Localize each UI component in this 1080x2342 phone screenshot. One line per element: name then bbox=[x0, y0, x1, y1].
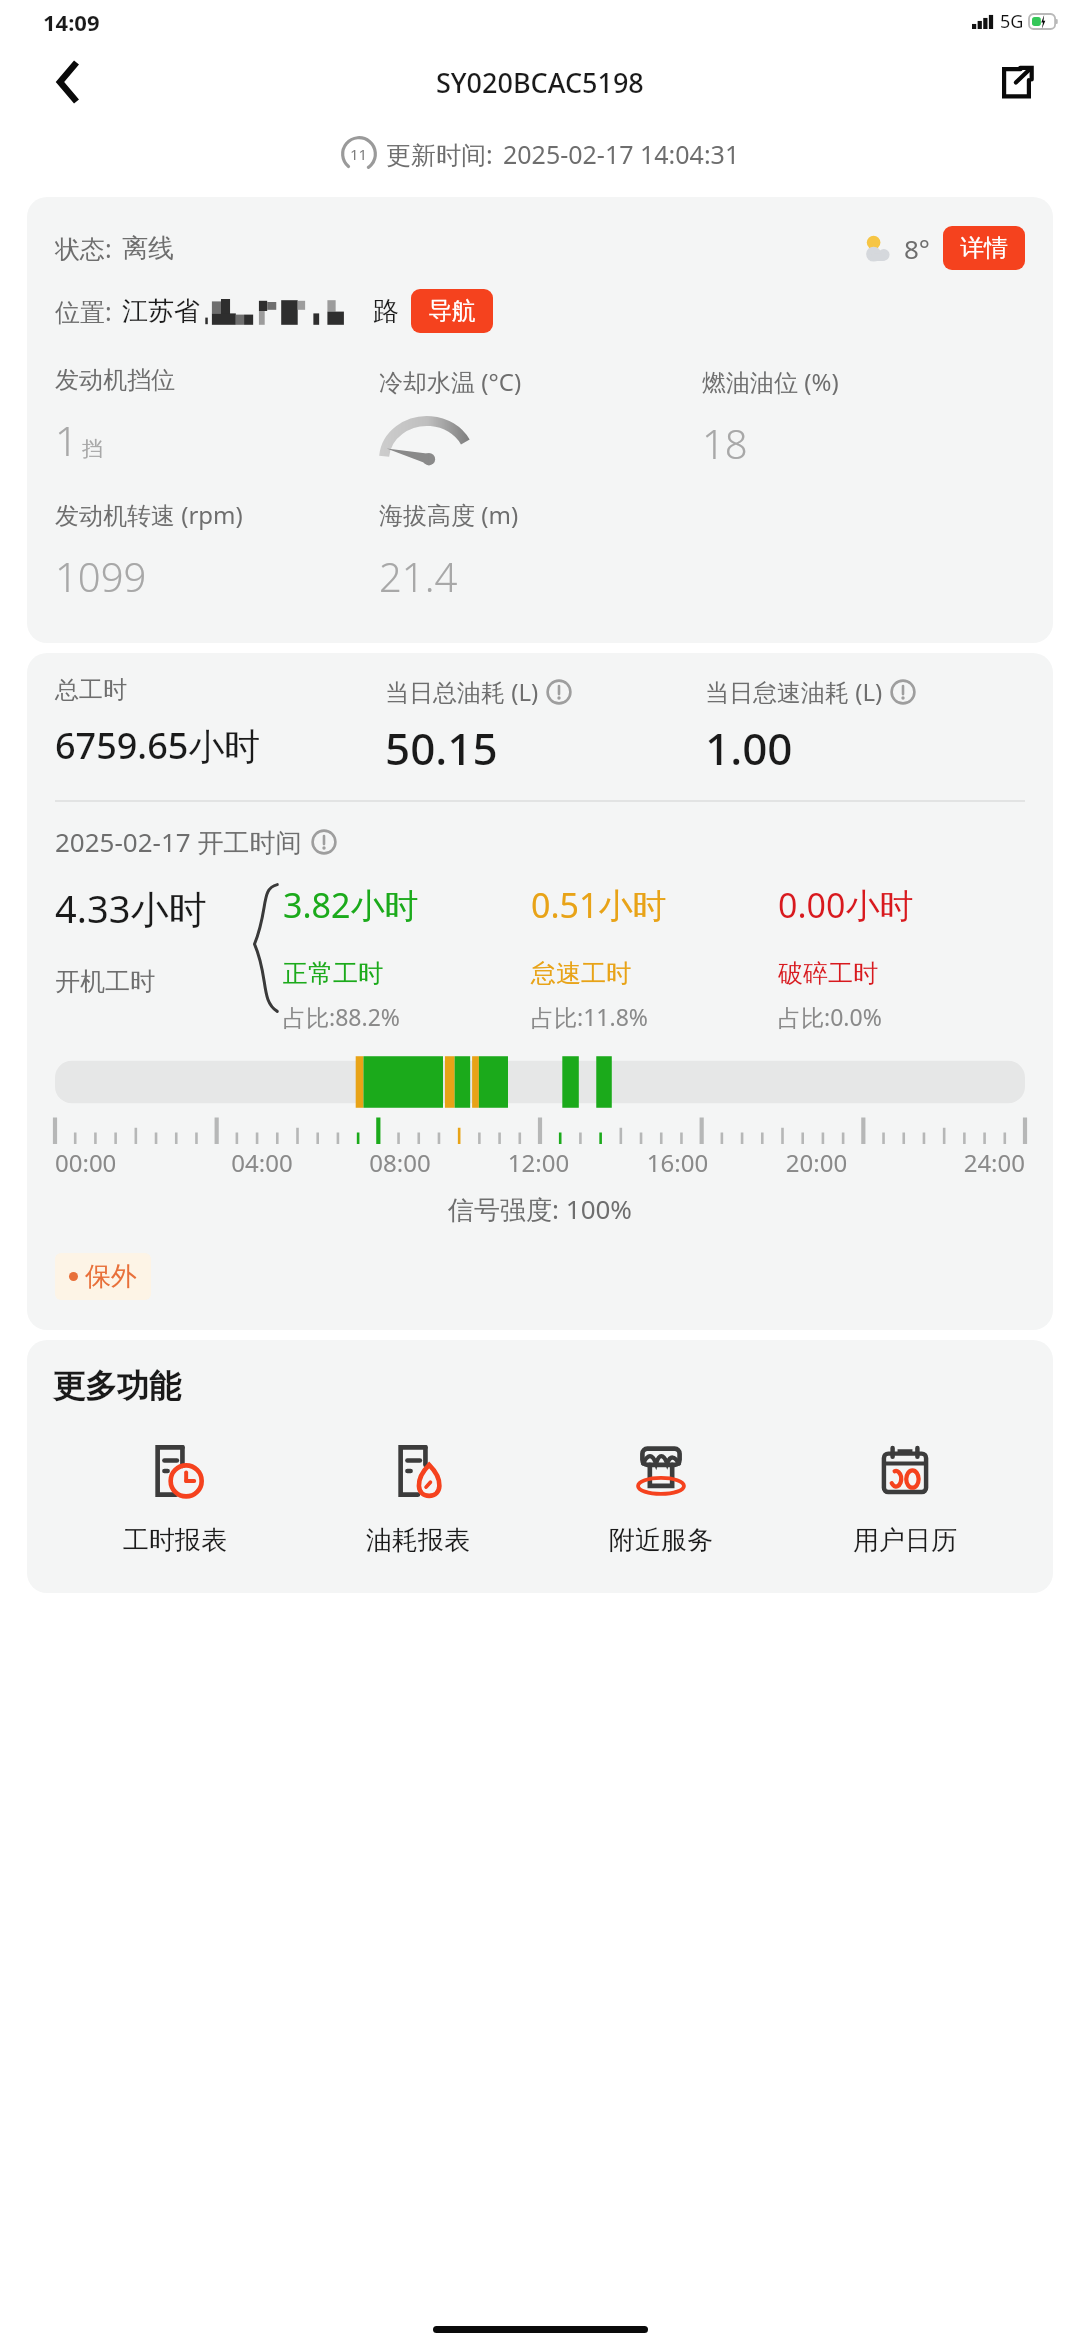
staticText: 位置: bbox=[55, 294, 112, 328]
staticText: 破碎工时 bbox=[778, 958, 878, 989]
staticText: 怠速工时 bbox=[531, 958, 631, 989]
staticText: SY020BCAC5198 bbox=[436, 64, 644, 101]
staticText: 信号强度: 100% bbox=[55, 1191, 1025, 1227]
staticText: 11 bbox=[350, 144, 368, 164]
staticText: 发动机挡位 bbox=[55, 365, 175, 395]
staticText: 20:00 bbox=[747, 1146, 886, 1179]
staticText: 24:00 bbox=[886, 1146, 1025, 1179]
button[interactable]: 导航 bbox=[411, 289, 493, 333]
staticText: 占比:88.2% bbox=[283, 1001, 400, 1032]
staticText: 附近服务 bbox=[609, 1524, 713, 1557]
staticText: 18 bbox=[702, 416, 748, 470]
staticText: 保外 bbox=[85, 1260, 137, 1293]
button[interactable]: 详情 bbox=[943, 226, 1025, 270]
staticText: 海拔高度 (m) bbox=[379, 498, 519, 531]
staticText: 开机工时 bbox=[55, 966, 155, 997]
staticText: 离线 bbox=[122, 232, 174, 265]
staticText: 8° bbox=[904, 231, 931, 266]
staticText: 1099 bbox=[55, 549, 147, 603]
button[interactable]: Info bbox=[311, 829, 337, 855]
staticText: 00:00 bbox=[55, 1146, 193, 1179]
button[interactable]: 工时报表 bbox=[53, 1440, 296, 1557]
button[interactable]: 油耗报表 bbox=[296, 1440, 539, 1557]
staticText: 当日总油耗 (L) bbox=[385, 675, 539, 708]
staticText: 16:00 bbox=[608, 1146, 747, 1179]
staticText: 用户日历 bbox=[853, 1524, 957, 1557]
staticText: 状态: bbox=[55, 231, 112, 265]
button[interactable]: 附近服务 bbox=[539, 1440, 783, 1557]
staticText: 燃油油位 (%) bbox=[702, 365, 839, 398]
staticText: 路 bbox=[373, 295, 399, 328]
staticText: 详情 bbox=[960, 233, 1008, 263]
staticText: 正常工时 bbox=[283, 958, 383, 989]
staticText: 2025-02-17 14:04:31 bbox=[503, 137, 740, 171]
staticText: 1.00 bbox=[705, 718, 793, 778]
staticText: 江苏省 bbox=[122, 295, 200, 328]
staticText: 12:00 bbox=[469, 1146, 608, 1179]
staticText: 工时报表 bbox=[123, 1524, 227, 1557]
staticText: 更新时间: bbox=[386, 137, 493, 171]
staticText: 占比:11.8% bbox=[531, 1001, 648, 1032]
staticText: 更多功能 bbox=[53, 1366, 181, 1406]
staticText: 2025-02-17 开工时间 bbox=[55, 824, 302, 860]
staticText: 导航 bbox=[428, 296, 476, 326]
button[interactable]: Info bbox=[890, 679, 916, 705]
staticText: 0.51小时 bbox=[531, 882, 667, 928]
staticText: 3.82小时 bbox=[283, 882, 419, 928]
staticText: 21.4 bbox=[379, 549, 458, 603]
button[interactable]: Back bbox=[40, 54, 96, 110]
staticText: 1 bbox=[55, 413, 78, 467]
staticText: 08:00 bbox=[331, 1146, 469, 1179]
staticText: 5G bbox=[1000, 9, 1024, 34]
button[interactable]: 保外 bbox=[55, 1253, 151, 1300]
staticText: 04:00 bbox=[193, 1146, 331, 1179]
button[interactable]: 用户日历 bbox=[783, 1440, 1027, 1557]
staticText: 发动机转速 (rpm) bbox=[55, 498, 243, 531]
staticText: 50.15 bbox=[385, 718, 498, 778]
staticText: 油耗报表 bbox=[366, 1524, 470, 1557]
staticText: 挡 bbox=[82, 436, 103, 462]
staticText: 4.33小时 bbox=[55, 882, 207, 934]
staticText: 6759.65小时 bbox=[55, 721, 261, 770]
button[interactable]: Info bbox=[546, 679, 572, 705]
staticText: 0.00小时 bbox=[778, 882, 914, 928]
staticText: 14:09 bbox=[43, 7, 100, 37]
staticText: 冷却水温 (°C) bbox=[379, 365, 522, 398]
staticText: 总工时 bbox=[55, 675, 127, 705]
button[interactable]: Share bbox=[988, 54, 1044, 110]
staticText: 占比:0.0% bbox=[778, 1001, 882, 1032]
staticText: 当日怠速油耗 (L) bbox=[705, 675, 883, 708]
